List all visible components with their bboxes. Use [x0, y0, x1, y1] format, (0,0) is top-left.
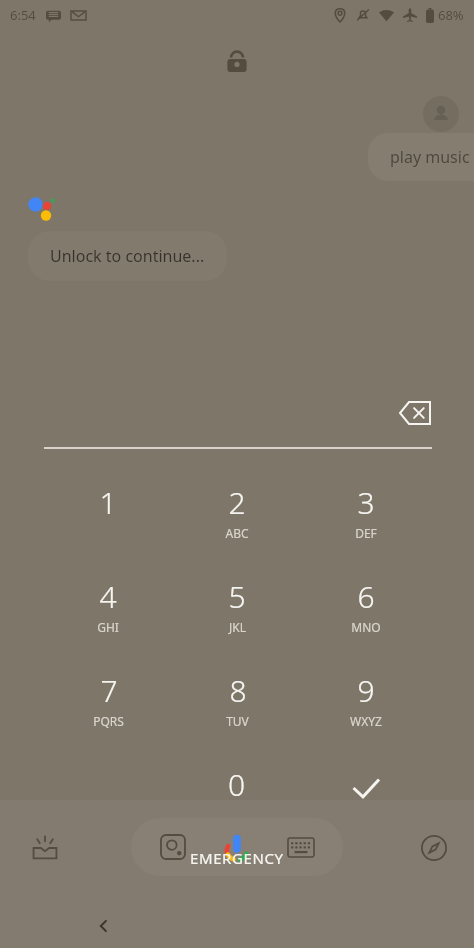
button[interactable]: 1	[56, 482, 160, 568]
staticText: 6	[357, 576, 375, 617]
button[interactable]: 7	[56, 670, 160, 756]
staticText: PQRS	[93, 713, 124, 729]
staticText: ABC	[225, 525, 249, 541]
staticText: WXYZ	[350, 713, 382, 729]
staticText: 2	[228, 482, 246, 523]
button[interactable]: Account	[423, 96, 459, 132]
button[interactable]: Voice search	[215, 825, 259, 869]
staticText: 1	[99, 482, 117, 523]
button[interactable]: EMERGENCY	[190, 848, 284, 868]
staticText: 3	[357, 482, 375, 523]
staticText: 9	[357, 670, 375, 711]
button[interactable]: Lens	[153, 827, 193, 867]
staticText: MNO	[351, 619, 381, 635]
button[interactable]: 0	[185, 764, 289, 830]
staticText: 68%	[438, 6, 464, 24]
button[interactable]: 9	[314, 670, 418, 756]
button[interactable]: 5	[185, 576, 289, 662]
staticText: play music	[390, 146, 470, 168]
staticText: 6:54	[10, 6, 36, 24]
button[interactable]: Backspace	[396, 394, 434, 432]
staticText: TUV	[226, 713, 249, 729]
button[interactable]: Explore	[414, 828, 454, 868]
button[interactable]: 4	[56, 576, 160, 662]
staticText: GHI	[97, 619, 119, 635]
staticText: 8	[229, 670, 247, 711]
staticText: DEF	[355, 525, 377, 541]
button[interactable]: Snapshot	[25, 828, 65, 868]
button[interactable]: Enter	[328, 766, 404, 822]
staticText: JKL	[229, 619, 246, 635]
button[interactable]: play music	[368, 133, 474, 181]
button[interactable]: Keyboard	[281, 827, 321, 867]
button[interactable]: 6	[314, 576, 418, 662]
staticText: 7	[100, 670, 118, 711]
button[interactable]: 8	[185, 670, 289, 756]
staticText: 4	[99, 576, 117, 617]
button[interactable]: 3	[314, 482, 418, 568]
staticText: 5	[228, 576, 246, 617]
button[interactable]: 2	[185, 482, 289, 568]
staticText: Unlock to continue...	[50, 245, 205, 267]
button[interactable]: Back	[84, 906, 124, 946]
staticText: 0	[228, 764, 246, 805]
button[interactable]: Unlock to continue...	[28, 231, 227, 281]
button[interactable]: Lens	[131, 818, 343, 876]
